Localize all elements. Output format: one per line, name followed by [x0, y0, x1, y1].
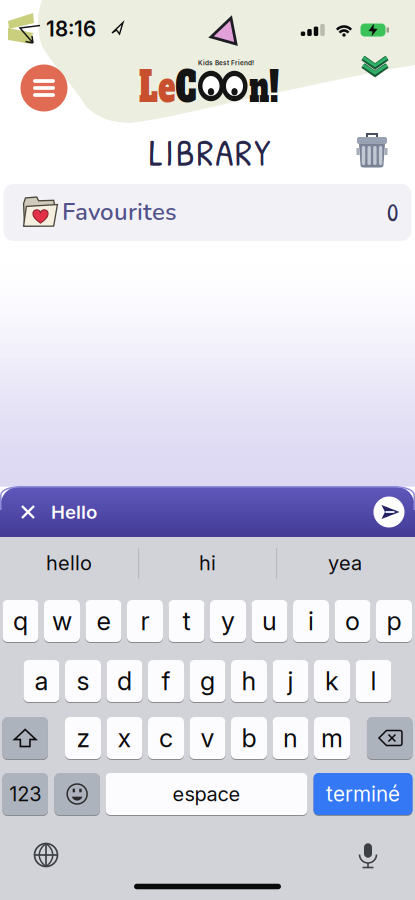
staticText: Favourites: [62, 196, 177, 228]
staticText: i: [308, 606, 314, 636]
button[interactable]: u: [251, 599, 287, 642]
staticText: y: [221, 606, 235, 636]
button[interactable]: q: [2, 599, 38, 642]
button[interactable]: w: [44, 599, 80, 642]
button[interactable]: Delete: [350, 129, 394, 173]
button[interactable]: i: [293, 599, 329, 642]
staticText: n: [283, 723, 298, 753]
staticText: w: [52, 606, 72, 636]
button[interactable]: Favourites: [3, 184, 411, 241]
staticText: c: [159, 723, 173, 753]
staticText: 123: [9, 782, 41, 806]
button[interactable]: p: [376, 599, 412, 642]
staticText: n!: [245, 62, 282, 112]
button[interactable]: Delete: [367, 716, 412, 759]
staticText: terminé: [326, 781, 400, 806]
button[interactable]: l: [355, 659, 391, 702]
button[interactable]: z: [65, 716, 101, 759]
button[interactable]: yea: [280, 543, 410, 583]
button[interactable]: Menu: [20, 64, 67, 111]
staticText: C: [173, 62, 199, 112]
button[interactable]: Dictation: [346, 833, 390, 877]
button[interactable]: hello: [4, 543, 134, 583]
staticText: q: [13, 606, 28, 636]
staticText: z: [76, 723, 89, 753]
button[interactable]: Close: [15, 499, 41, 525]
button[interactable]: g: [189, 659, 225, 702]
button[interactable]: espace: [105, 772, 307, 815]
button[interactable]: e: [85, 599, 121, 642]
staticText: a: [34, 666, 48, 696]
staticText: yea: [328, 551, 362, 575]
staticText: 18:16: [46, 16, 96, 41]
staticText: espace: [172, 782, 240, 806]
staticText: h: [241, 666, 256, 696]
button[interactable]: 123: [2, 772, 48, 815]
button[interactable]: h: [231, 659, 267, 702]
staticText: b: [241, 723, 256, 753]
staticText: l: [370, 666, 376, 696]
staticText: 0: [387, 195, 398, 229]
button[interactable]: x: [106, 716, 142, 759]
button[interactable]: Emoji: [54, 772, 100, 815]
button[interactable]: s: [65, 659, 101, 702]
staticText: o: [345, 606, 360, 636]
button[interactable]: t: [168, 599, 204, 642]
staticText: hello: [46, 551, 92, 575]
staticText: m: [321, 723, 343, 753]
staticText: r: [140, 606, 149, 636]
button[interactable]: d: [106, 659, 142, 702]
staticText: Kids Best Friend!: [198, 59, 254, 67]
staticText: f: [161, 666, 170, 696]
button[interactable]: a: [23, 659, 59, 702]
button[interactable]: k: [314, 659, 350, 702]
staticText: hi: [199, 551, 216, 575]
button[interactable]: f: [148, 659, 184, 702]
button[interactable]: hi: [142, 543, 272, 583]
staticText: s: [76, 666, 89, 696]
button[interactable]: r: [127, 599, 163, 642]
staticText: u: [262, 606, 277, 636]
button[interactable]: m: [314, 716, 350, 759]
staticText: k: [325, 666, 339, 696]
button[interactable]: Send: [373, 496, 404, 527]
staticText: v: [200, 723, 214, 753]
staticText: Le: [134, 62, 179, 112]
staticText: t: [182, 606, 190, 636]
staticText: LIBRARY: [149, 127, 271, 177]
button[interactable]: v: [189, 716, 225, 759]
button[interactable]: n: [272, 716, 308, 759]
button[interactable]: j: [272, 659, 308, 702]
staticText: d: [117, 666, 132, 696]
button[interactable]: b: [231, 716, 267, 759]
button[interactable]: terminé: [313, 772, 412, 815]
staticText: p: [386, 606, 401, 636]
staticText: Hello: [51, 501, 97, 523]
staticText: j: [287, 666, 293, 696]
button[interactable]: Next keyboard: [24, 833, 68, 877]
button[interactable]: c: [148, 716, 184, 759]
button[interactable]: y: [210, 599, 246, 642]
staticText: g: [200, 666, 215, 696]
button[interactable]: o: [334, 599, 370, 642]
staticText: x: [117, 723, 131, 753]
staticText: e: [96, 606, 110, 636]
button[interactable]: Shift: [2, 716, 48, 759]
